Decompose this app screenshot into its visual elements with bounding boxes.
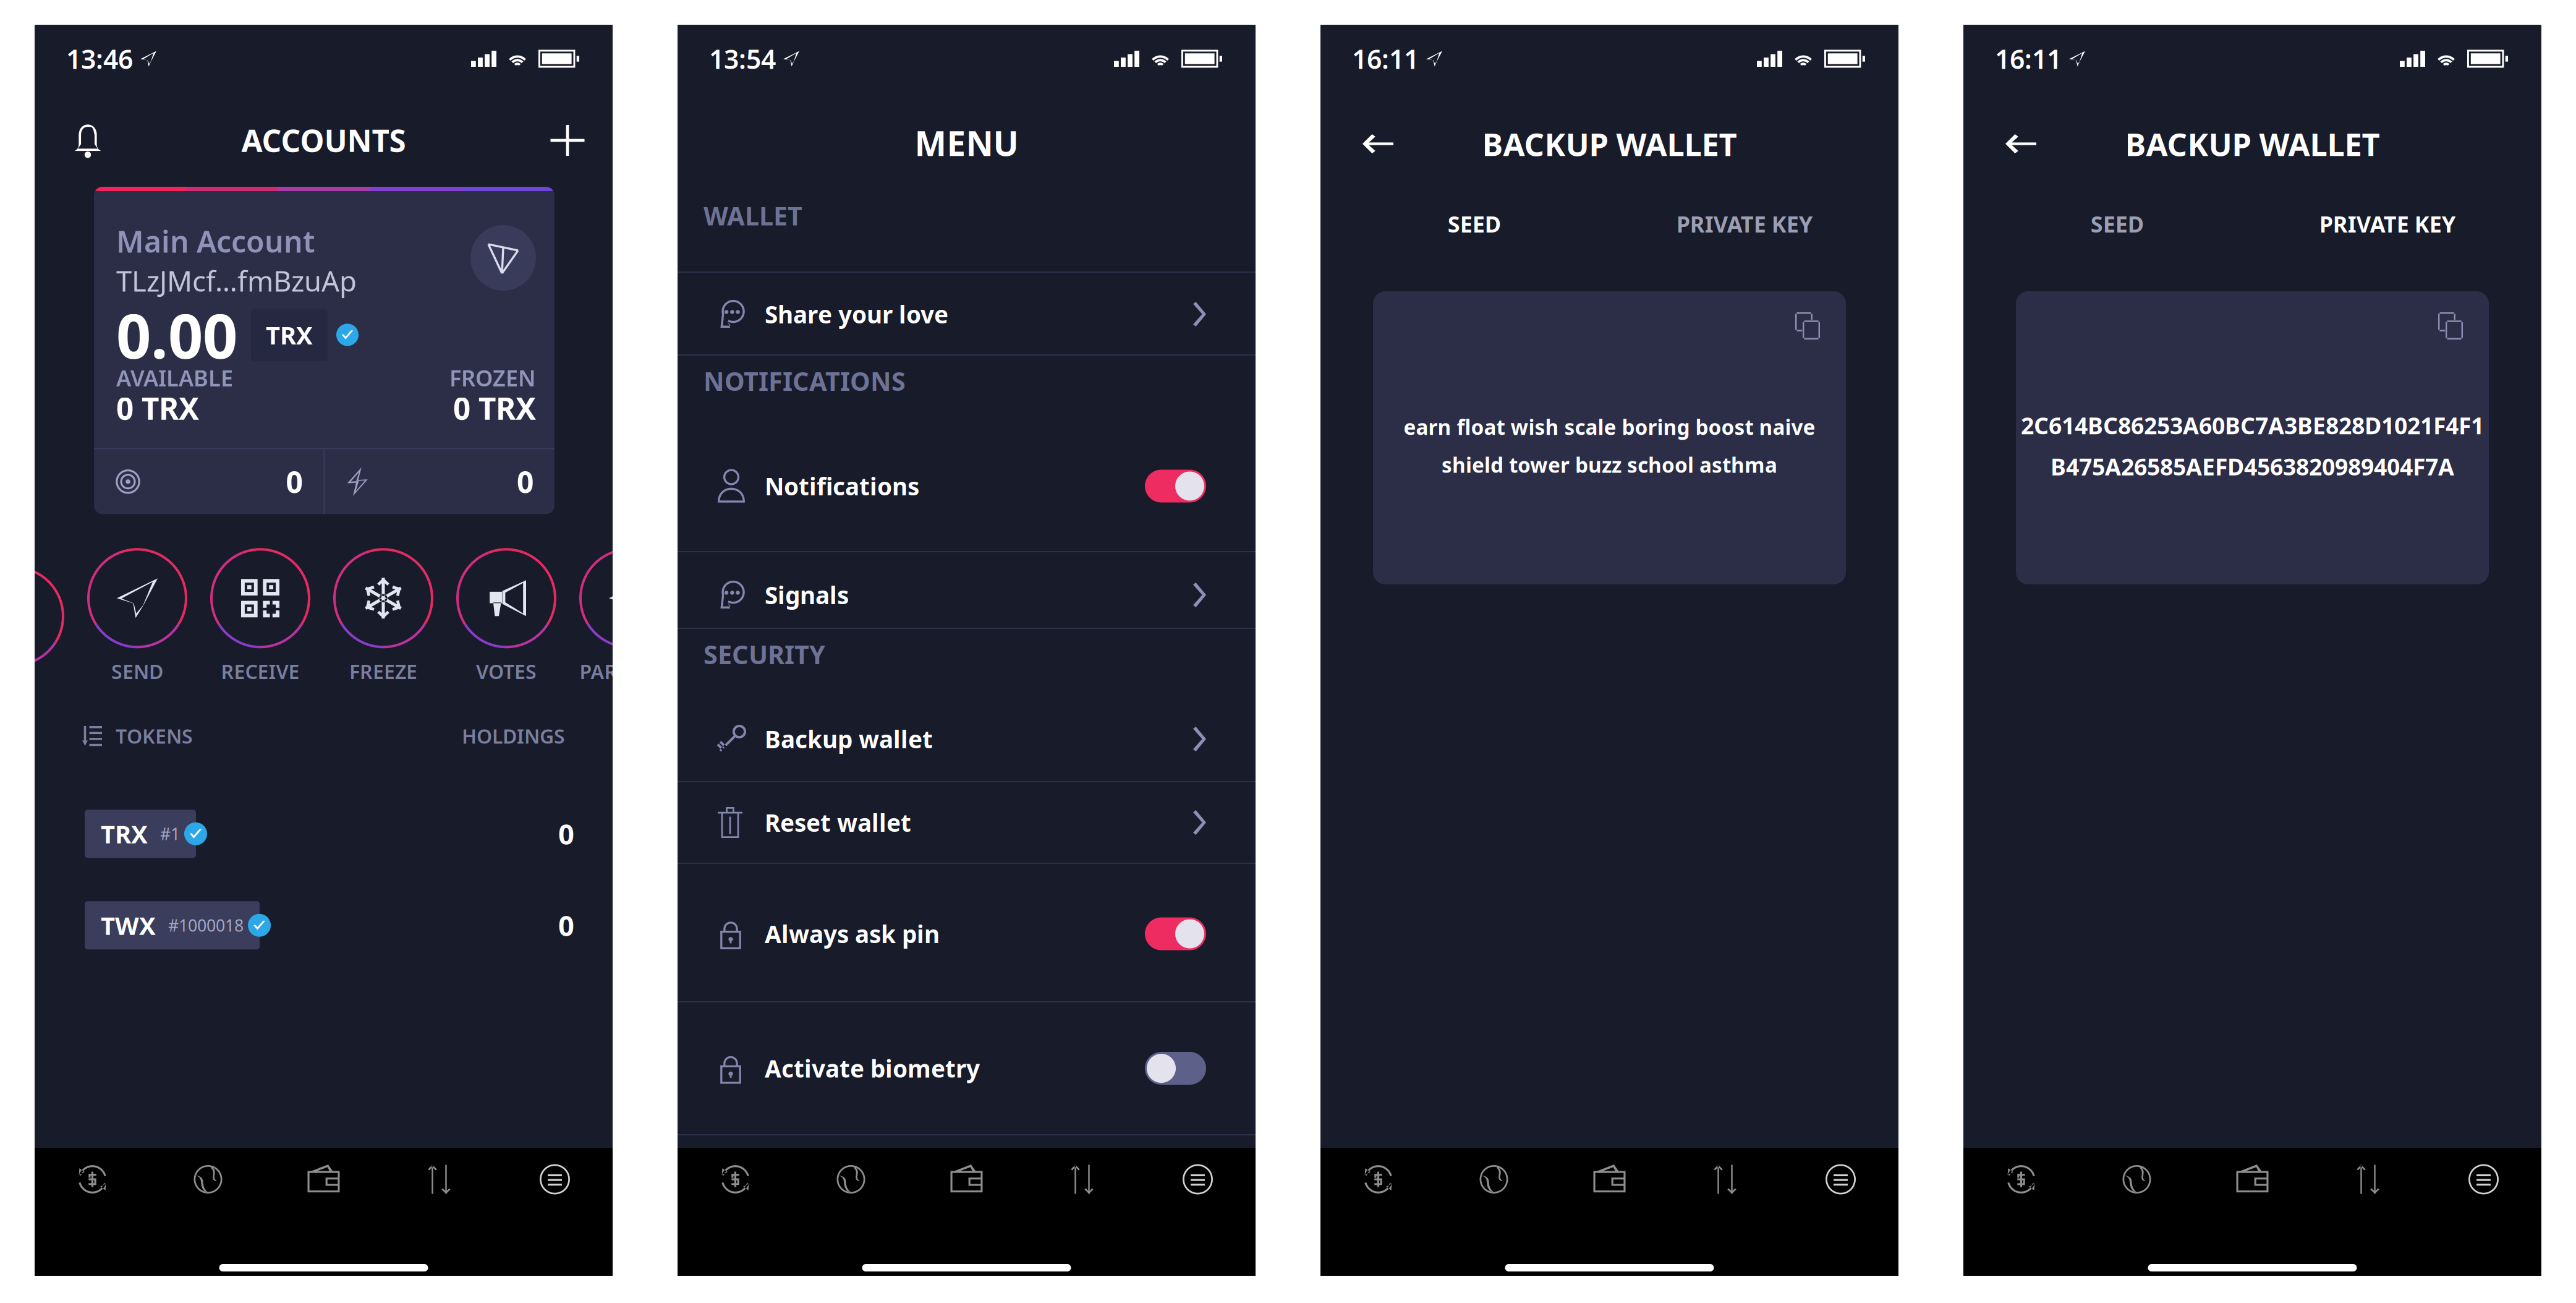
- staticText: TOKENS: [116, 723, 193, 749]
- button[interactable]: Signals: [678, 552, 1256, 628]
- button[interactable]: Menu: [497, 1151, 613, 1207]
- staticText: BACKUP WALLET: [2125, 123, 2380, 165]
- staticText: 0: [517, 462, 533, 501]
- button[interactable]: Markets: [2079, 1151, 2195, 1207]
- button[interactable]: Backup wallet: [678, 683, 1256, 781]
- staticText: PRIVATE KEY: [1676, 209, 1813, 239]
- staticText: HOLDINGS: [462, 723, 565, 749]
- button[interactable]: Back: [1348, 114, 1408, 173]
- button[interactable]: Copy: [2428, 304, 2473, 348]
- button[interactable]: Markets: [1436, 1151, 1552, 1207]
- staticText: SECURITY: [704, 637, 825, 671]
- staticText: SEED: [2091, 209, 2144, 239]
- staticText: 0 TRX: [116, 388, 199, 428]
- button[interactable]: Transactions: [2310, 1151, 2426, 1207]
- staticText: Share your love: [765, 298, 948, 330]
- staticText: 0.00: [116, 294, 237, 375]
- staticText: SEED: [1448, 209, 1501, 239]
- staticText: Signals: [765, 579, 849, 611]
- button[interactable]: PRIVATE KEY: [2252, 193, 2523, 255]
- button[interactable]: Reset wallet: [678, 782, 1256, 863]
- button[interactable]: Always ask pin: [678, 864, 1256, 1001]
- button[interactable]: PRIVATE KEY: [1609, 193, 1880, 255]
- staticText: WALLET: [704, 199, 802, 233]
- button[interactable]: Wallet: [1552, 1151, 1667, 1207]
- staticText: TRX: [266, 318, 313, 351]
- staticText: TWX: [101, 909, 156, 942]
- button[interactable]: SEED: [1339, 193, 1609, 255]
- staticText: AVAILABLE: [116, 363, 233, 393]
- staticText: Main Account: [116, 221, 315, 261]
- staticText: Backup wallet: [765, 723, 933, 755]
- staticText: 16:11: [1995, 41, 2062, 76]
- button[interactable]: TWX: [35, 880, 613, 971]
- button[interactable]: Exchange: [678, 1151, 793, 1207]
- button[interactable]: Copy: [1785, 304, 1830, 348]
- button[interactable]: Exchange: [1320, 1151, 1436, 1207]
- staticText: 16:11: [1352, 41, 1419, 76]
- staticText: Always ask pin: [765, 918, 940, 950]
- staticText: NOTIFICATIONS: [704, 364, 906, 398]
- staticText: VOTES: [476, 658, 537, 684]
- button[interactable]: VOTES: [456, 548, 556, 684]
- button[interactable]: Markets: [793, 1151, 909, 1207]
- button[interactable]: Wallet: [909, 1151, 1024, 1207]
- staticText: PRIVATE KEY: [2319, 209, 2456, 239]
- staticText: 13:46: [66, 41, 133, 76]
- staticText: RECEIVE: [221, 658, 300, 684]
- button[interactable]: TRX: [35, 788, 613, 880]
- staticText: earn float wish scale boring boost naive: [1404, 413, 1815, 441]
- button[interactable]: Exchange: [1963, 1151, 2079, 1207]
- button[interactable]: FREEZE: [333, 548, 433, 684]
- button[interactable]: Share your love: [678, 273, 1256, 354]
- button[interactable]: SEED: [1982, 193, 2252, 255]
- staticText: shield tower buzz school asthma: [1442, 451, 1777, 479]
- button[interactable]: Transactions: [1667, 1151, 1783, 1207]
- button[interactable]: Markets: [150, 1151, 266, 1207]
- staticText: 2C614BC86253A60BC7A3BE828D1021F4F1: [2021, 410, 2484, 441]
- button[interactable]: RECEIVE: [210, 548, 310, 684]
- staticText: B475A26585AEFD4563820989404F7A: [2051, 451, 2454, 482]
- button[interactable]: Menu: [1783, 1151, 1898, 1207]
- staticText: Activate biometry: [765, 1052, 980, 1084]
- staticText: PARTNERS: [580, 658, 679, 684]
- button[interactable]: Wallet: [2195, 1151, 2310, 1207]
- staticText: 13:54: [709, 41, 776, 76]
- staticText: BACKUP WALLET: [1482, 123, 1737, 165]
- staticText: TRX: [101, 817, 148, 850]
- button[interactable]: Notifications: [58, 111, 117, 170]
- button[interactable]: Back: [1991, 114, 2051, 173]
- staticText: Notifications: [765, 470, 919, 502]
- staticText: SEND: [111, 658, 163, 684]
- button[interactable]: Activate biometry: [678, 1002, 1256, 1134]
- button[interactable]: Transactions: [1024, 1151, 1140, 1207]
- staticText: 0: [558, 907, 574, 944]
- staticText: FROZEN: [449, 363, 536, 393]
- button[interactable]: Add account: [538, 111, 597, 170]
- button[interactable]: Wallet: [266, 1151, 381, 1207]
- button[interactable]: Transactions: [381, 1151, 497, 1207]
- staticText: 0 TRX: [453, 388, 536, 428]
- button[interactable]: Menu: [2426, 1151, 2541, 1207]
- staticText: FREEZE: [349, 658, 417, 684]
- staticText: #1000018: [168, 914, 244, 936]
- staticText: 0: [286, 462, 303, 501]
- staticText: ACCOUNTS: [241, 120, 406, 160]
- button[interactable]: PARTNERS: [579, 548, 679, 684]
- staticText: Reset wallet: [765, 807, 911, 838]
- button[interactable]: Notifications: [678, 410, 1256, 551]
- staticText: TLzJMcf…fmBzuAp: [116, 262, 357, 299]
- staticText: #1: [160, 823, 180, 845]
- staticText: MENU: [915, 120, 1018, 165]
- button[interactable]: SEND: [87, 548, 187, 684]
- staticText: 0: [558, 815, 574, 852]
- button[interactable]: Menu: [1140, 1151, 1256, 1207]
- button[interactable]: Exchange: [35, 1151, 150, 1207]
